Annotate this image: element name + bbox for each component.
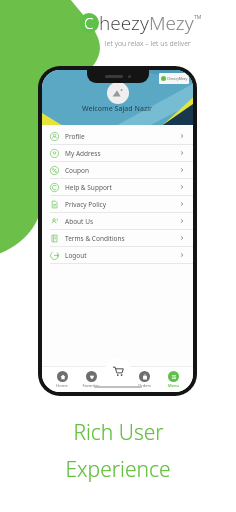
button[interactable]: Menu: [159, 371, 187, 388]
staticText: Menu: [168, 383, 179, 388]
staticText: Mezy: [149, 10, 194, 36]
staticText: Welcome Sajad Nazir: [82, 104, 153, 114]
staticText: Help & Support: [65, 183, 112, 192]
staticText: Coupon: [65, 166, 90, 175]
staticText: Home: [56, 383, 68, 388]
staticText: heezy: [99, 10, 149, 36]
staticText: Orders: [138, 383, 151, 388]
button[interactable]: Cart: [105, 358, 131, 384]
button[interactable]: Logout: [42, 247, 193, 263]
staticText: Terms & Conditions: [65, 234, 125, 243]
button[interactable]: My Address: [42, 145, 193, 161]
staticText: CheezyMezy: [167, 76, 188, 81]
staticText: Favorites: [82, 383, 100, 388]
staticText: TM: [194, 14, 202, 21]
button[interactable]: Home: [48, 371, 76, 388]
staticText: Rich User: [73, 418, 164, 447]
staticText: My Address: [65, 149, 101, 158]
button[interactable]: Favorites: [77, 371, 105, 388]
staticText: Privacy Policy: [65, 200, 107, 209]
staticText: C: [84, 13, 94, 33]
button[interactable]: Help & Support: [42, 179, 193, 195]
staticText: Profile: [65, 132, 85, 141]
button[interactable]: Privacy Policy: [42, 196, 193, 212]
staticText: let you relax – let us deliver: [105, 39, 191, 49]
button[interactable]: Terms & Conditions: [42, 230, 193, 246]
staticText: Logout: [65, 251, 87, 260]
button[interactable]: Coupon: [42, 162, 193, 178]
button[interactable]: About Us: [42, 213, 193, 229]
button[interactable]: Orders: [130, 371, 158, 388]
staticText: About Us: [65, 217, 94, 226]
button[interactable]: Profile: [42, 128, 193, 144]
staticText: Experience: [65, 455, 171, 484]
